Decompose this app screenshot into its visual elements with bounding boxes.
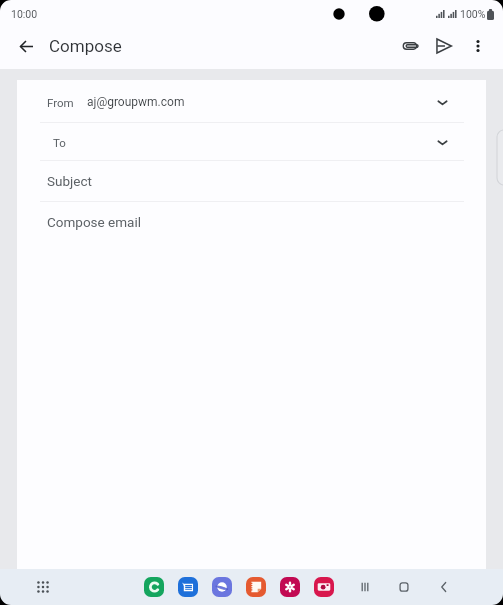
staticText: 10:00 (11, 8, 38, 20)
staticText: To (53, 136, 66, 149)
button[interactable]: Edge panel (495, 129, 503, 186)
staticText: From (47, 96, 74, 109)
button[interactable]: App shortcut (212, 577, 232, 597)
button[interactable]: More options (465, 33, 491, 59)
button[interactable]: App shortcut (178, 577, 198, 597)
button[interactable]: Compose email (17, 201, 486, 243)
button[interactable]: Subject (17, 160, 486, 202)
button[interactable]: Home (392, 575, 416, 599)
button[interactable]: Send (431, 33, 457, 59)
button[interactable]: App shortcut (246, 577, 266, 597)
staticText: Compose email (47, 214, 141, 230)
button[interactable]: App shortcut (144, 577, 164, 597)
staticText: 100% (460, 8, 486, 20)
button[interactable]: Apps (30, 574, 56, 600)
staticText: aj@groupwm.com (87, 95, 185, 109)
button[interactable]: App shortcut (280, 577, 300, 597)
button[interactable]: Back (432, 575, 456, 599)
button[interactable]: App shortcut (314, 577, 334, 597)
button[interactable]: Attach file (397, 33, 423, 59)
button[interactable]: To (17, 123, 486, 161)
button[interactable]: From (17, 81, 486, 123)
button[interactable]: Navigate up (13, 33, 39, 59)
button[interactable]: Recents (353, 575, 377, 599)
staticText: Subject (47, 173, 92, 189)
staticText: Compose (49, 36, 122, 56)
